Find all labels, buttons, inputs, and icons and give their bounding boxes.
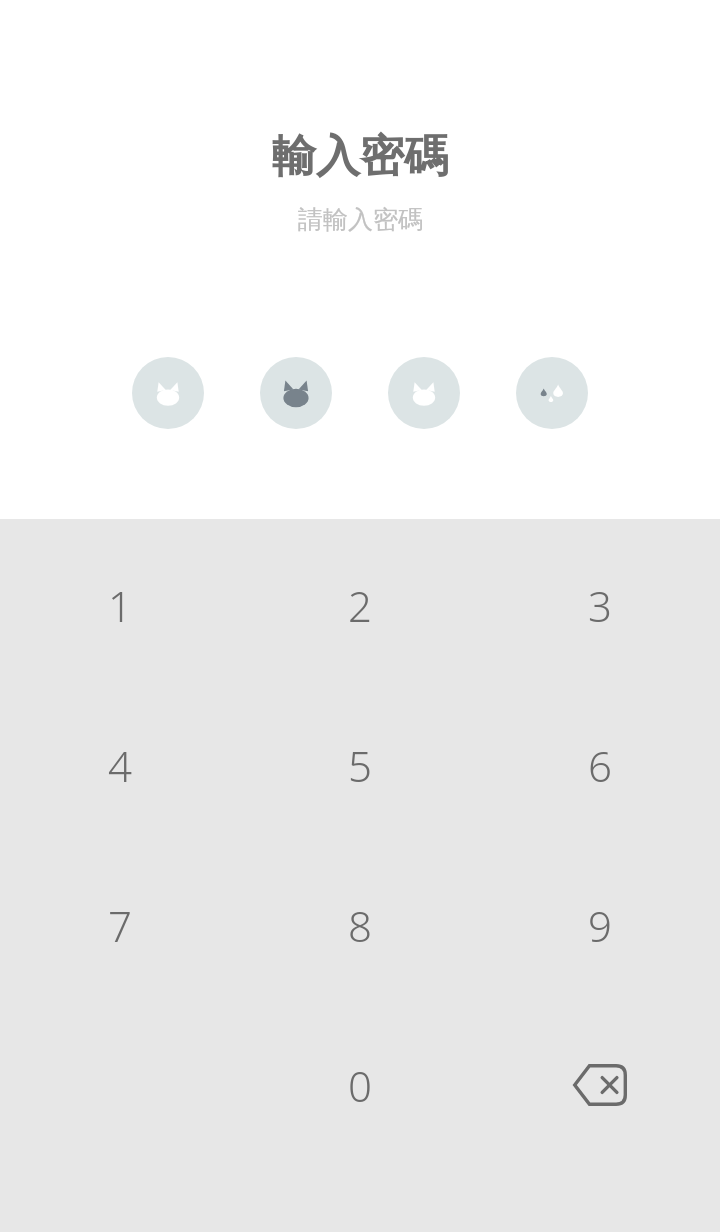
button[interactable]: 6 [480,685,720,845]
button[interactable]: 8 [240,845,480,1005]
staticText: 8 [348,897,372,954]
staticText: 1 [108,577,132,634]
button[interactable]: 2 [240,525,480,685]
button[interactable]: 3 [480,525,720,685]
staticText: 3 [588,577,612,634]
staticText: 2 [348,577,372,634]
button[interactable]: 7 [0,845,240,1005]
button[interactable]: Backspace [480,1005,720,1165]
button[interactable]: 9 [480,845,720,1005]
staticText: 9 [588,897,612,954]
staticText: 5 [348,737,372,794]
staticText: 4 [108,737,132,794]
staticText: 0 [348,1057,372,1114]
staticText: 輸入密碼 [272,129,448,184]
button[interactable]: 1 [0,525,240,685]
button[interactable]: 4 [0,685,240,845]
staticText: 請輸入密碼 [298,204,423,235]
button[interactable]: 0 [240,1005,480,1165]
button[interactable]: 5 [240,685,480,845]
staticText: 6 [588,737,612,794]
staticText: 7 [108,897,132,954]
